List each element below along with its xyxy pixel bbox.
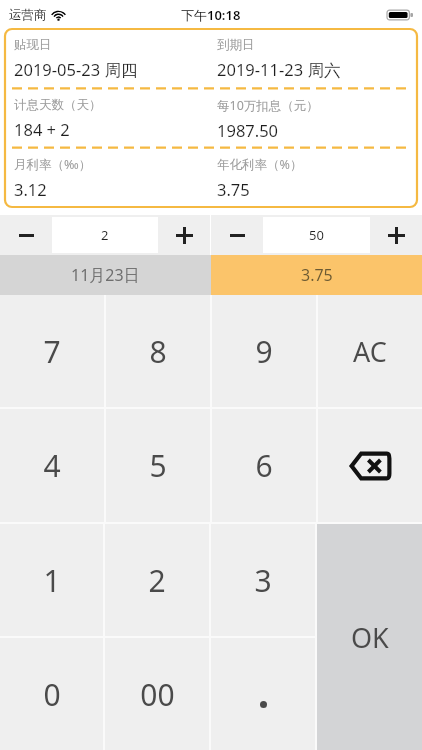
staticText: 运营商: [9, 7, 47, 23]
staticText: 3: [254, 560, 272, 601]
button[interactable]: Decimal point: [211, 638, 315, 750]
staticText: 计息天数（天）: [14, 97, 102, 113]
staticText: 9: [255, 331, 273, 372]
button[interactable]: Increase: [158, 215, 210, 255]
staticText: 11月23日: [71, 264, 140, 286]
staticText: 月利率（‰）: [14, 156, 92, 173]
button[interactable]: 2: [105, 524, 209, 636]
button[interactable]: Increase: [370, 215, 422, 255]
button[interactable]: 3: [211, 524, 315, 636]
staticText: 6: [255, 445, 273, 486]
staticText: 2019-11-23 周六: [217, 58, 341, 81]
button[interactable]: 50: [263, 217, 370, 253]
button[interactable]: Backspace: [318, 409, 422, 522]
staticText: 贴现日: [14, 37, 52, 53]
staticText: 到期日: [217, 37, 255, 53]
staticText: 3.75: [217, 178, 250, 200]
staticText: 184 + 2: [14, 118, 70, 140]
staticText: 2: [101, 226, 109, 244]
button[interactable]: 9: [212, 295, 316, 407]
button[interactable]: AC: [318, 295, 422, 407]
staticText: 下午10:18: [181, 6, 241, 24]
button[interactable]: 7: [0, 295, 104, 407]
button[interactable]: Decrease: [0, 215, 52, 255]
button[interactable]: 4: [0, 409, 104, 522]
button[interactable]: 2: [52, 217, 158, 253]
staticText: 50: [309, 226, 324, 244]
staticText: 每10万扣息（元）: [217, 97, 319, 114]
button[interactable]: 11月23日: [0, 255, 211, 295]
staticText: 3.75: [301, 264, 333, 286]
staticText: 00: [140, 674, 175, 715]
staticText: 4: [43, 445, 61, 486]
staticText: 8: [149, 331, 167, 372]
staticText: 7: [43, 331, 61, 372]
staticText: 5: [149, 445, 167, 486]
button[interactable]: 0: [0, 638, 103, 750]
staticText: 2: [148, 560, 166, 601]
staticText: 2019-05-23 周四: [14, 58, 138, 81]
button[interactable]: OK: [317, 524, 422, 750]
button[interactable]: 8: [106, 295, 210, 407]
staticText: 1987.50: [217, 119, 279, 141]
staticText: 3.12: [14, 178, 47, 200]
staticText: AC: [353, 333, 387, 370]
staticText: 1: [43, 560, 61, 601]
button[interactable]: 3.75: [211, 255, 422, 295]
staticText: 年化利率（%）: [217, 156, 303, 173]
button[interactable]: 00: [105, 638, 209, 750]
button[interactable]: 1: [0, 524, 103, 636]
button[interactable]: 5: [106, 409, 210, 522]
button[interactable]: 6: [212, 409, 316, 522]
button[interactable]: Decrease: [211, 215, 263, 255]
staticText: OK: [351, 619, 389, 656]
staticText: 0: [43, 674, 61, 715]
